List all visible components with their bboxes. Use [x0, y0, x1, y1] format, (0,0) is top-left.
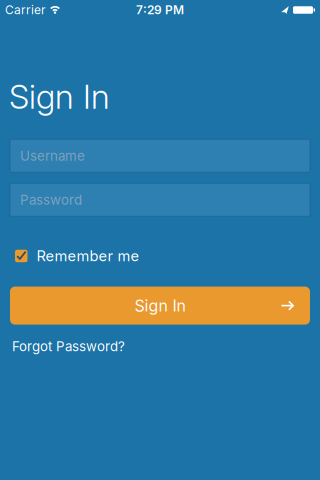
textField[interactable]: Username	[20, 148, 310, 164]
staticText: 7:29 PM	[136, 3, 184, 17]
staticText: Username	[20, 148, 85, 164]
staticText: Password	[20, 192, 82, 208]
staticText: Carrier	[5, 3, 46, 17]
button[interactable]: Sign In	[10, 287, 310, 325]
staticText: Remember me	[36, 247, 139, 265]
staticText: Username	[20, 148, 85, 164]
button[interactable]: Remember me	[15, 247, 139, 265]
secureTextField[interactable]: Password	[20, 192, 310, 208]
staticText: Password	[20, 192, 82, 208]
staticText: Sign In	[9, 77, 110, 116]
staticText: Forgot Password?	[12, 339, 125, 354]
button[interactable]: Forgot Password?	[12, 339, 125, 354]
staticText: Sign In	[134, 296, 185, 315]
